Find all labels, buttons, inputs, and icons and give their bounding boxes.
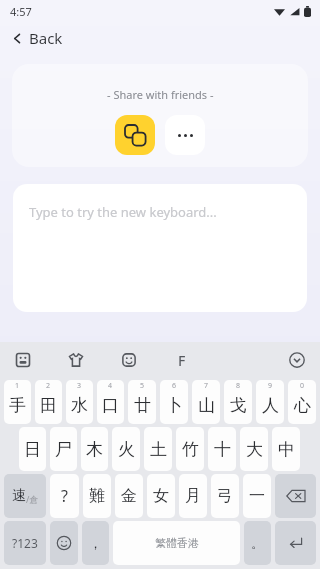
staticText: 金 [121,486,137,506]
button[interactable]: 3 [66,380,93,424]
staticText: 田 [40,395,57,416]
staticText: 竹 [182,439,199,460]
button[interactable]: 火 [112,427,140,471]
button[interactable]: 1 [4,380,31,424]
staticText: 繁體香港 [155,536,199,550]
button[interactable]: Themes [65,349,87,371]
staticText: 0 [300,381,305,391]
button[interactable]: 6 [160,380,188,424]
button[interactable]: 5 [128,380,156,424]
staticText: 水 [71,395,88,416]
button[interactable]: 大 [240,427,268,471]
staticText: F [178,351,186,370]
button[interactable]: More [165,115,205,155]
button[interactable]: 竹 [176,427,204,471]
staticText: ?123 [12,535,38,551]
button[interactable]: 弓 [211,474,239,518]
button[interactable]: 9 [256,380,284,424]
staticText: 卜 [166,395,183,416]
button[interactable]: 4 [97,380,124,424]
staticText: ? [61,485,68,507]
staticText: Type to try the new keyboard... [29,203,217,221]
button[interactable]: 金 [115,474,143,518]
staticText: 。 [251,535,264,551]
staticText: 難 [89,486,105,506]
staticText: - Share with friends - [107,87,214,102]
button[interactable]: ? [50,474,79,518]
staticText: 十 [214,439,231,460]
button[interactable]: 尸 [50,427,77,471]
staticText: 廿 [134,395,151,416]
staticText: 弓 [217,486,233,506]
staticText: 1 [15,381,20,391]
button[interactable]: 十 [208,427,236,471]
staticText: 木 [86,439,103,460]
button[interactable]: 難 [83,474,111,518]
staticText: ， [89,535,102,551]
staticText: 速 [12,487,26,505]
staticText: 2 [46,381,51,391]
staticText: 5 [140,381,145,391]
staticText: 日 [24,439,41,460]
staticText: 6 [172,381,177,391]
staticText: 一 [249,486,265,506]
button[interactable]: Font [171,349,193,371]
staticText: Back [29,28,63,48]
button[interactable]: Enter [275,521,316,565]
staticText: 手 [9,395,26,416]
button[interactable]: Back [0,22,320,54]
button[interactable]: ?123 [4,521,46,565]
staticText: 4:57 [10,4,32,19]
button[interactable]: Type to try the new keyboard... [13,184,307,312]
staticText: 9 [268,381,273,391]
button[interactable]: Emoji [50,521,78,565]
staticText: 月 [185,486,201,506]
button[interactable]: 女 [147,474,175,518]
button[interactable]: Collapse keyboard [286,349,308,371]
staticText: 戈 [230,395,247,416]
button[interactable]: 一 [243,474,271,518]
button[interactable]: 木 [81,427,108,471]
staticText: 大 [246,439,263,460]
staticText: 中 [278,439,295,460]
button[interactable]: 。 [244,521,271,565]
staticText: 人 [262,395,279,416]
button[interactable]: 2 [35,380,62,424]
button[interactable]: 月 [179,474,207,518]
staticText: 4 [108,381,113,391]
staticText: 心 [294,395,311,416]
button[interactable]: Emoji [118,349,140,371]
staticText: /倉 [26,493,39,505]
staticText: 女 [153,486,169,506]
staticText: 7 [204,381,209,391]
button[interactable]: 0 [288,380,316,424]
button[interactable]: 速 [4,474,46,518]
button[interactable]: Share [115,115,155,155]
staticText: 3 [77,381,82,391]
staticText: 尸 [55,439,72,460]
button[interactable]: 7 [192,380,220,424]
button[interactable]: 日 [19,427,46,471]
button[interactable]: Stickers [12,349,34,371]
button[interactable]: Backspace [275,474,316,518]
staticText: 8 [236,381,241,391]
button[interactable]: 土 [144,427,172,471]
staticText: 口 [102,395,119,416]
staticText: 土 [150,439,167,460]
button[interactable]: 中 [272,427,300,471]
staticText: 山 [198,395,215,416]
button[interactable]: ， [82,521,109,565]
button[interactable]: 8 [224,380,252,424]
staticText: 火 [118,439,135,460]
button[interactable]: 繁體香港 [113,521,240,565]
